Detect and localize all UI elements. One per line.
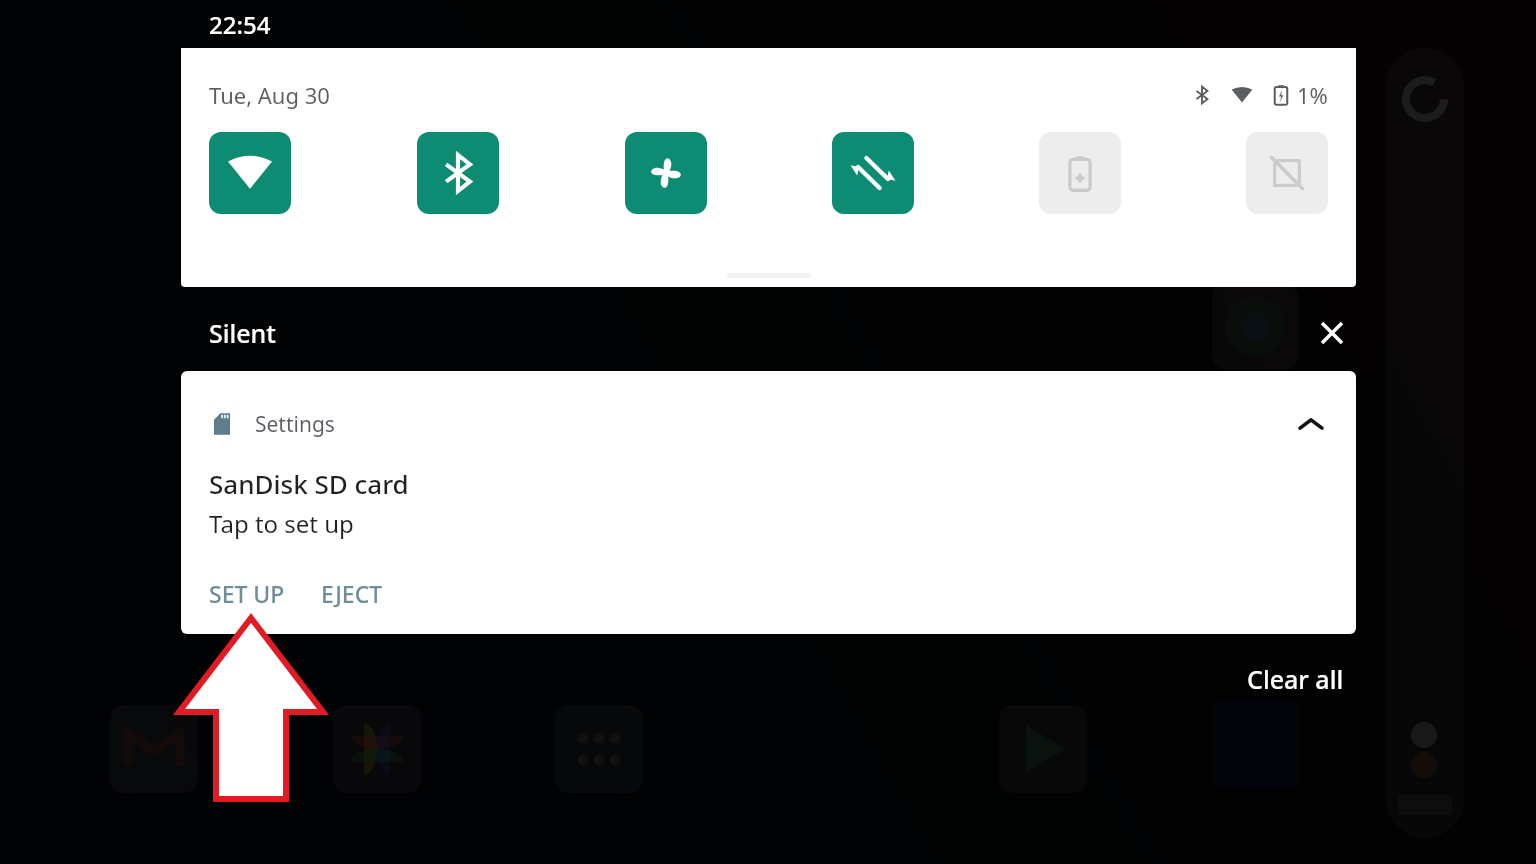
staticText: EJECT [321, 578, 383, 609]
button[interactable]: Wi-Fi [209, 132, 291, 214]
staticText: SanDisk SD card [209, 466, 409, 501]
button[interactable]: Bluetooth [417, 132, 499, 214]
button[interactable]: Collapse [1288, 401, 1334, 447]
staticText: Settings [255, 410, 335, 439]
staticText: Silent [209, 316, 276, 350]
button[interactable]: Close [1308, 309, 1356, 357]
staticText: 1% [1297, 80, 1328, 110]
staticText: SET UP [209, 578, 285, 609]
staticText: Tue, Aug 30 [209, 80, 330, 110]
button[interactable]: Clear all [1231, 654, 1360, 704]
button[interactable]: Settings [181, 371, 1356, 634]
button[interactable]: Battery saver [1039, 132, 1121, 214]
staticText: 22:54 [209, 8, 271, 41]
staticText: Tap to set up [209, 507, 354, 540]
staticText: Clear all [1247, 662, 1344, 696]
button[interactable]: EJECT [307, 570, 397, 617]
button[interactable]: Rotation lock [1246, 132, 1328, 214]
button[interactable]: Flashlight [625, 132, 707, 214]
button[interactable]: SET UP [195, 570, 299, 617]
button[interactable]: Auto rotate [832, 132, 914, 214]
